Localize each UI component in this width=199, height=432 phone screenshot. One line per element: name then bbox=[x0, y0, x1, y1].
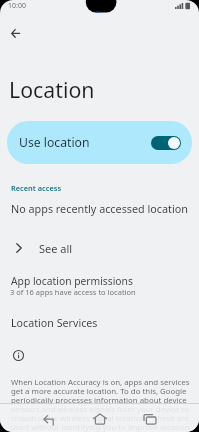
button[interactable] bbox=[0, 21, 31, 45]
staticText: Use location bbox=[19, 134, 90, 151]
staticText: Location bbox=[9, 75, 95, 104]
button[interactable]: Use location bbox=[7, 121, 192, 164]
staticText: 3 of 16 apps have access to location bbox=[10, 287, 136, 297]
staticText: App location permissions bbox=[11, 274, 133, 288]
button[interactable]: Location Services bbox=[0, 312, 199, 334]
button[interactable]: App location permissions bbox=[0, 270, 199, 300]
button[interactable]: See all bbox=[0, 236, 199, 260]
button[interactable] bbox=[84, 405, 116, 432]
button[interactable] bbox=[134, 405, 166, 432]
staticText: When Location Accuracy is on, apps and s… bbox=[11, 377, 190, 432]
staticText: 10:00 bbox=[8, 1, 26, 11]
staticText: No apps recently accessed location bbox=[11, 201, 188, 216]
button[interactable] bbox=[33, 406, 65, 432]
staticText: Location Services bbox=[11, 316, 98, 331]
staticText: See all bbox=[39, 241, 73, 256]
staticText: Recent access bbox=[11, 183, 62, 193]
